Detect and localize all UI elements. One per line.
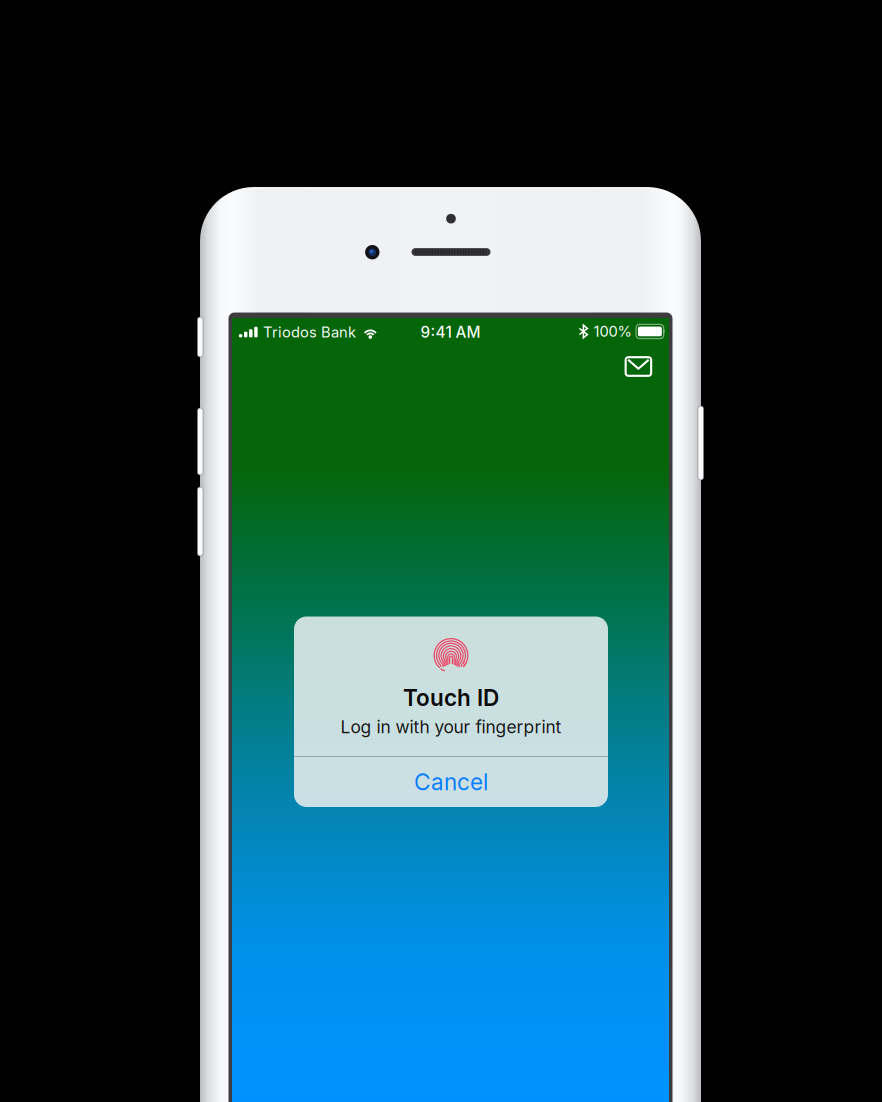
staticText: 100% <box>593 323 631 340</box>
staticText: Cancel <box>414 768 488 796</box>
staticText: Triodos Bank <box>263 323 356 341</box>
staticText: Touch ID <box>403 684 499 711</box>
staticText: Log in with your fingerprint <box>340 716 561 737</box>
staticText: 9:41 AM <box>420 323 480 342</box>
button[interactable]: Cancel <box>294 757 608 807</box>
button[interactable]: Mail <box>616 347 660 385</box>
